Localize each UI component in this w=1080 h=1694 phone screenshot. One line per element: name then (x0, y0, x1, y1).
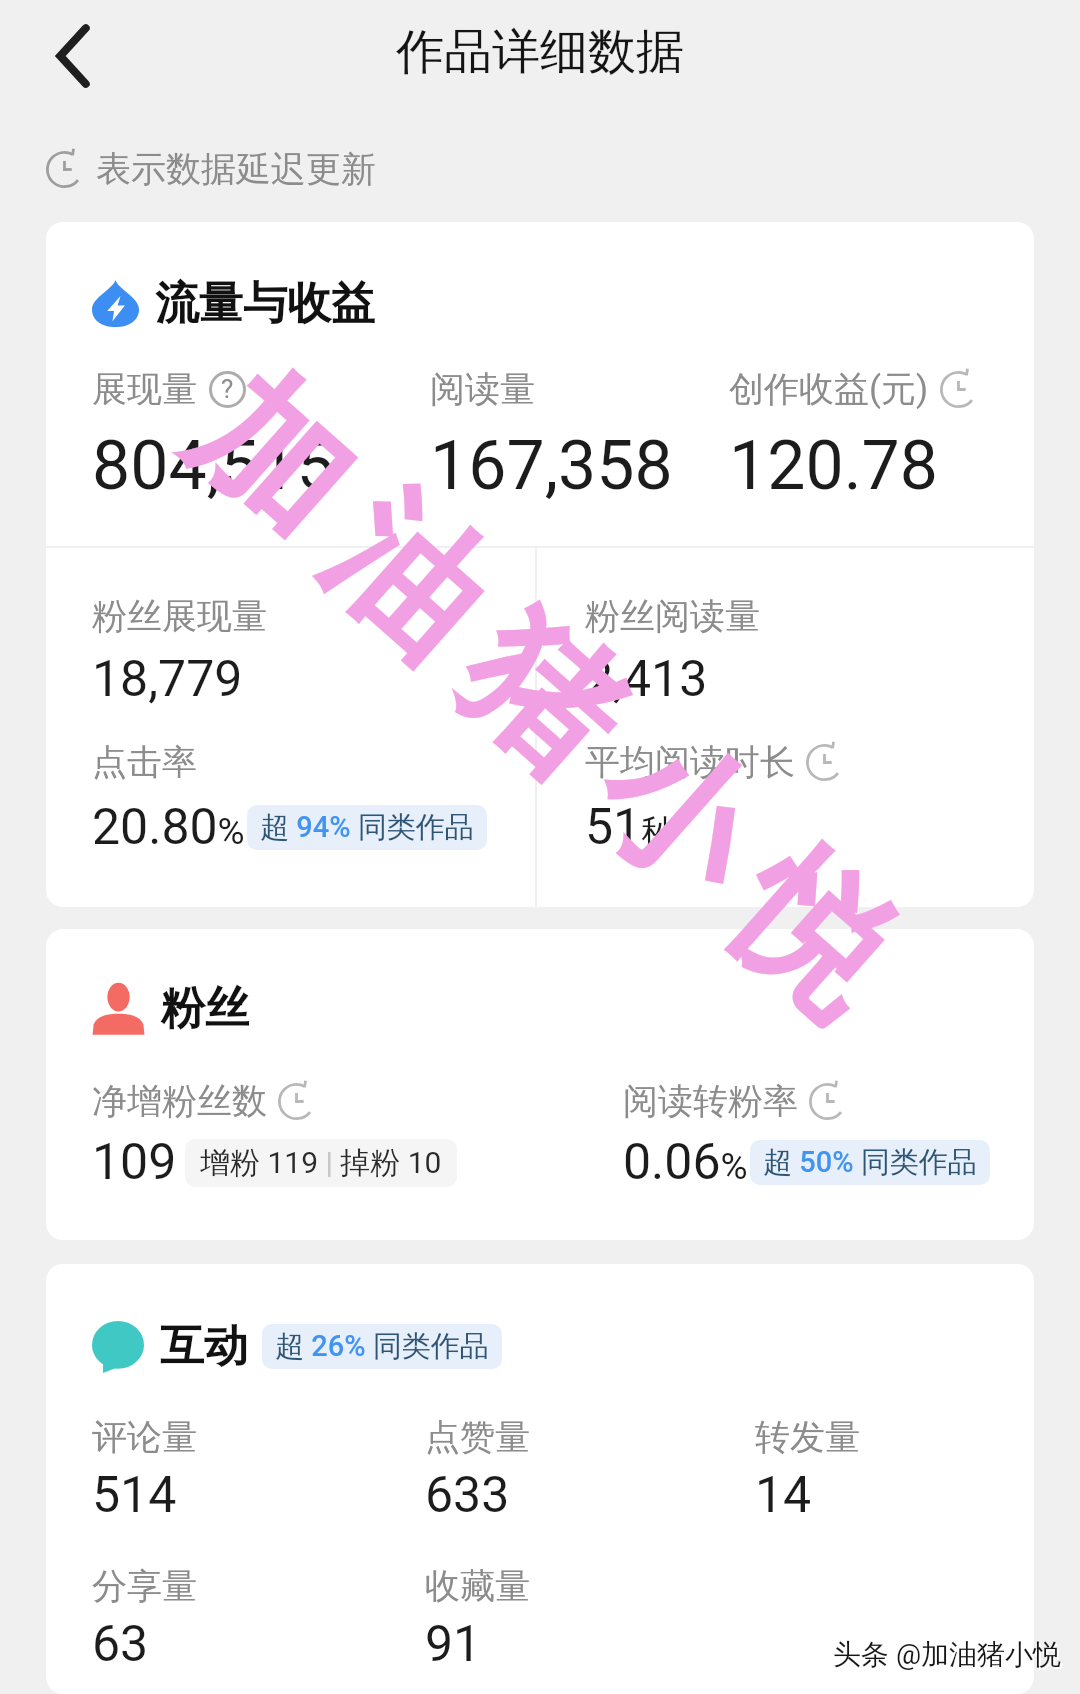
staticText: 点击率 (92, 740, 197, 784)
staticText: 转发量 (755, 1415, 860, 1459)
staticText: 2,413 (585, 650, 708, 709)
staticText: 评论量 (92, 1415, 197, 1459)
staticText: 804,515 (92, 426, 335, 506)
staticText: 作品详细数据 (396, 22, 684, 82)
staticText: 头条 @加油猪小悦 (833, 1637, 1062, 1672)
staticText: 阅读转粉率 (623, 1079, 798, 1123)
staticText: 收藏量 (425, 1564, 530, 1608)
staticText: 平均阅读时长 (585, 740, 795, 784)
staticText: 超 50% 同类作品 (763, 1144, 977, 1181)
staticText: 表示数据延迟更新 (96, 147, 376, 191)
staticText: 514 (92, 1466, 177, 1525)
staticText: 20.80% (92, 798, 245, 857)
staticText: 展现量 (92, 367, 197, 411)
staticText: 0.06% (623, 1133, 748, 1192)
staticText: 增粉 119 | 掉粉 10 (200, 1144, 442, 1182)
staticText: 创作收益(元) (729, 367, 929, 411)
staticText: 分享量 (92, 1564, 197, 1608)
button[interactable]: Back (33, 16, 113, 96)
button[interactable]: What is impressions? (209, 371, 246, 408)
staticText: 净增粉丝数 (92, 1079, 267, 1123)
staticText: 18,779 (92, 650, 243, 709)
staticText: 633 (425, 1466, 510, 1525)
staticText: 63 (92, 1615, 149, 1674)
staticText: 点赞量 (425, 1415, 530, 1459)
staticText: 流量与收益 (155, 276, 375, 331)
staticText: 粉丝展现量 (92, 594, 267, 638)
staticText: 互动 (160, 1319, 248, 1374)
staticText: 109 (92, 1133, 177, 1192)
staticText: 14 (755, 1466, 812, 1525)
staticText: 粉丝 (161, 981, 249, 1036)
staticText: 超 94% 同类作品 (260, 809, 474, 846)
staticText: 167,358 (430, 426, 673, 506)
staticText: 51秒 (585, 798, 676, 857)
staticText: 头条 @加油猪小悦 (835, 1639, 1064, 1674)
staticText: 超 26% 同类作品 (275, 1328, 489, 1365)
staticText: 粉丝阅读量 (585, 594, 760, 638)
staticText: 120.78 (729, 426, 939, 506)
staticText: 加油猪小悦 (143, 329, 942, 1067)
staticText: ? (221, 374, 234, 404)
staticText: 阅读量 (430, 367, 535, 411)
staticText: 91 (425, 1615, 482, 1674)
